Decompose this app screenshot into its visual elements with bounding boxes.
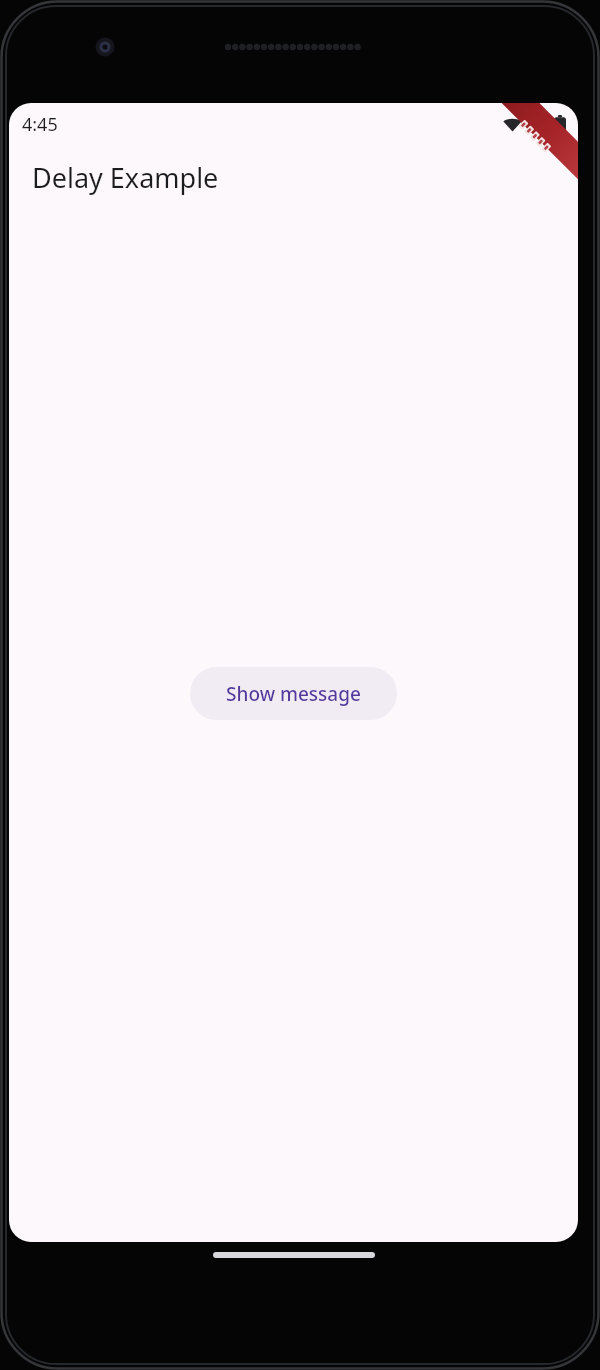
other: Debug build banner (486, 103, 578, 195)
staticText: Show message (226, 681, 361, 707)
button[interactable]: Show message (190, 667, 397, 720)
staticText: 4:45 (22, 112, 58, 137)
staticText: Delay Example (32, 159, 219, 196)
